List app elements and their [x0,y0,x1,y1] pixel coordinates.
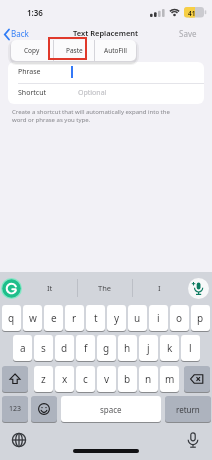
staticText: u [134,311,141,325]
button[interactable]: f [76,335,95,361]
button[interactable]: Save [177,26,205,42]
button[interactable]: The [78,277,132,299]
staticText: Create a shortcut that will automaticall… [12,108,170,124]
button[interactable]: Phrase [8,62,204,83]
staticText: Paste [66,46,83,55]
button[interactable]: u [128,305,147,331]
staticText: r [72,311,77,325]
button[interactable]: j [139,335,158,361]
button[interactable]: z [34,366,53,392]
staticText: return [176,404,200,415]
staticText: h [124,341,131,355]
button[interactable]: AutoFill [94,40,136,61]
button[interactable]: h [118,335,137,361]
button[interactable]: q [2,305,21,331]
button[interactable]: 123 [2,396,28,422]
staticText: Phrase [18,67,41,77]
staticText: v [104,372,110,386]
staticText: t [94,311,98,325]
button[interactable]: space [61,396,161,422]
button[interactable]: Copy [11,40,53,61]
staticText: The [98,283,112,293]
button[interactable]: k [160,335,179,361]
button[interactable]: o [170,305,189,331]
staticText: p [197,311,204,325]
staticText: q [8,311,15,325]
staticText: f [84,341,88,355]
button[interactable]: g [97,335,116,361]
staticText: m [165,372,175,386]
button[interactable]: e [44,305,63,331]
button[interactable] [12,433,26,447]
staticText: 123 [9,404,22,414]
staticText: d [61,341,68,355]
staticText: w [29,311,37,325]
button[interactable]: n [139,366,158,392]
staticText: Copy [24,46,40,55]
button[interactable]: i [149,305,168,331]
button[interactable]: l [181,335,200,361]
staticText: o [176,311,183,325]
button[interactable]: b [118,366,137,392]
button[interactable]: Shortcut [8,83,204,104]
staticText: 1:36 [27,7,43,18]
button[interactable]: m [160,366,179,392]
staticText: Shortcut [18,88,47,98]
button[interactable]: r [65,305,84,331]
button[interactable]: x [55,366,74,392]
staticText: s [41,341,46,355]
button[interactable] [186,432,200,448]
button[interactable]: s [34,335,53,361]
button[interactable]: d [55,335,74,361]
staticText: Save [179,28,197,39]
button[interactable]: v [97,366,116,392]
staticText: a [20,341,26,355]
staticText: y [114,311,120,325]
button[interactable] [188,278,209,299]
staticText: 41 [188,9,196,18]
staticText: Text Replacement [73,28,139,38]
button[interactable] [184,366,210,392]
button[interactable]: Back [2,26,34,42]
staticText: b [124,372,131,386]
button[interactable]: return [165,396,211,422]
staticText: g [103,341,110,355]
button[interactable]: a [13,335,32,361]
button[interactable]: c [76,366,95,392]
button[interactable]: t [86,305,105,331]
staticText: i [157,311,160,325]
staticText: j [147,341,150,355]
staticText: c [83,372,88,386]
button[interactable]: Paste [53,40,95,61]
staticText: It [47,283,53,293]
staticText: Optional [78,88,107,98]
staticText: z [41,372,46,386]
staticText: space [100,404,122,415]
button[interactable]: y [107,305,126,331]
button[interactable]: w [23,305,42,331]
button[interactable]: It [24,277,76,299]
staticText: Back [11,28,29,39]
staticText: AutoFill [104,46,127,55]
staticText: I [158,283,161,293]
button[interactable] [2,366,28,392]
button[interactable]: p [191,305,210,331]
staticText: l [189,341,192,355]
button[interactable] [31,396,57,422]
staticText: n [145,372,152,386]
staticText: e [51,311,57,325]
staticText: k [167,341,173,355]
button[interactable]: I [133,277,185,299]
staticText: x [62,372,68,386]
